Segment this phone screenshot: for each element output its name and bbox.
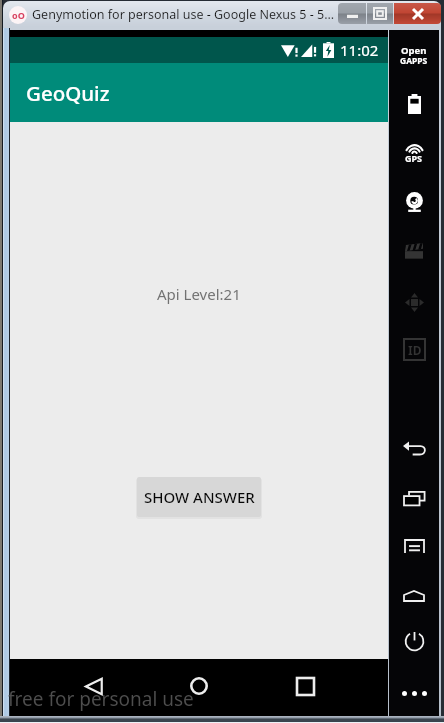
button[interactable]: Move <box>389 286 439 318</box>
staticText: SHOW ANSWER <box>144 487 255 507</box>
staticText: 11:02 <box>340 40 379 60</box>
button[interactable]: Maximize <box>367 3 393 24</box>
button[interactable]: Home <box>188 675 210 697</box>
button[interactable]: Battery <box>389 88 439 120</box>
staticText: oO <box>12 9 25 21</box>
button[interactable]: Menu <box>389 530 439 562</box>
staticText: GeoQuiz <box>26 79 110 107</box>
button[interactable]: Back <box>389 433 439 465</box>
button[interactable]: Recent apps <box>389 482 439 514</box>
button[interactable]: Power <box>389 625 439 657</box>
button[interactable]: Back <box>83 675 105 697</box>
button[interactable]: ID <box>389 333 439 365</box>
button[interactable]: Home <box>389 580 439 612</box>
staticText: Open <box>401 44 427 57</box>
button[interactable]: GPS <box>389 139 439 171</box>
staticText: ID <box>408 342 422 358</box>
staticText: Genymotion for personal use - Google Nex… <box>32 6 338 23</box>
button[interactable]: Record video <box>389 235 439 267</box>
staticText: GPS <box>405 152 423 164</box>
button[interactable]: Camera <box>389 186 439 218</box>
button[interactable]: Open GAPPS <box>389 40 439 72</box>
button[interactable]: Minimize <box>338 3 366 24</box>
button[interactable]: Close <box>394 3 441 24</box>
staticText: Api Level:21 <box>157 284 241 304</box>
staticText: GAPPS <box>400 55 428 67</box>
staticText: free for personal use <box>8 686 194 712</box>
button[interactable]: SHOW ANSWER <box>137 477 261 517</box>
button[interactable]: Recents <box>294 675 316 697</box>
button[interactable]: More options <box>389 677 439 709</box>
